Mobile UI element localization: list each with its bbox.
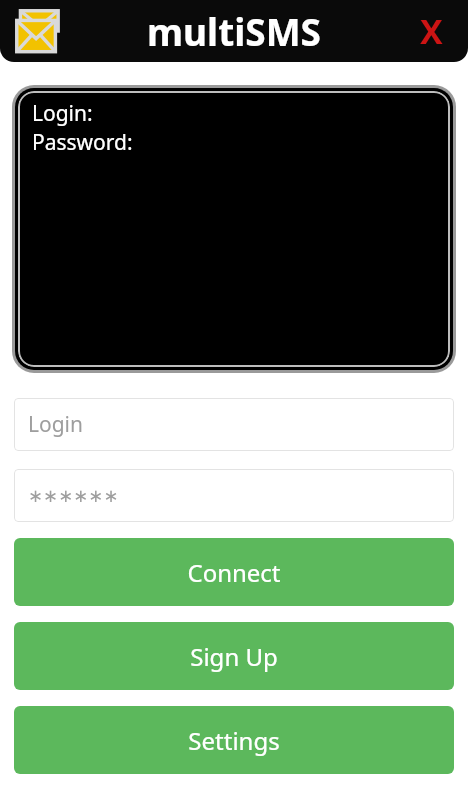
button[interactable]: Sign Up	[14, 622, 454, 690]
staticText: Settings	[188, 724, 280, 757]
staticText: Sign Up	[190, 640, 278, 673]
staticText: Login	[28, 410, 84, 439]
other: multiSMS app icon	[14, 8, 60, 54]
button[interactable]: Login:	[18, 91, 450, 367]
button[interactable]: Connect	[14, 538, 454, 606]
button[interactable]: Close	[404, 4, 458, 58]
staticText: Connect	[187, 556, 281, 589]
button[interactable]: ∗∗∗∗∗∗	[14, 469, 454, 522]
staticText: ∗∗∗∗∗∗	[28, 485, 119, 506]
staticText: Login:	[32, 99, 93, 128]
staticText: multiSMS	[147, 6, 321, 56]
button[interactable]: Login	[14, 398, 454, 451]
staticText: X	[420, 8, 443, 54]
staticText: Password:	[32, 128, 133, 157]
button[interactable]: Settings	[14, 706, 454, 774]
